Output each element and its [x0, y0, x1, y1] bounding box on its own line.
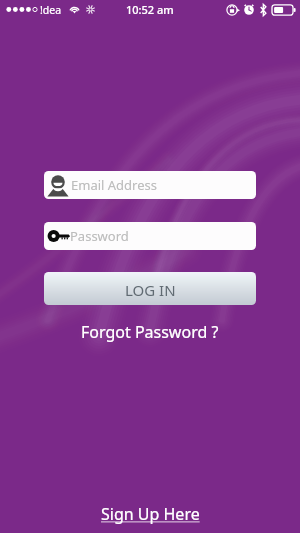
button[interactable]: Email: [44, 171, 256, 199]
staticText: Email Address: [71, 176, 157, 194]
button[interactable]: LOG IN: [44, 272, 256, 305]
button[interactable]: Password: [44, 222, 256, 250]
staticText: Forgot Password ?: [81, 321, 219, 343]
other: Password: [47, 225, 70, 247]
button[interactable]: Forgot Password ?: [71, 319, 229, 345]
staticText: Sign Up Here: [101, 503, 200, 525]
button[interactable]: Sign Up Here: [93, 502, 208, 526]
staticText: Password: [70, 227, 129, 245]
staticText: 10:52 am: [126, 2, 174, 17]
staticText: !dea: [40, 3, 62, 17]
staticText: LOG IN: [125, 280, 176, 300]
other: Email: [47, 173, 69, 197]
